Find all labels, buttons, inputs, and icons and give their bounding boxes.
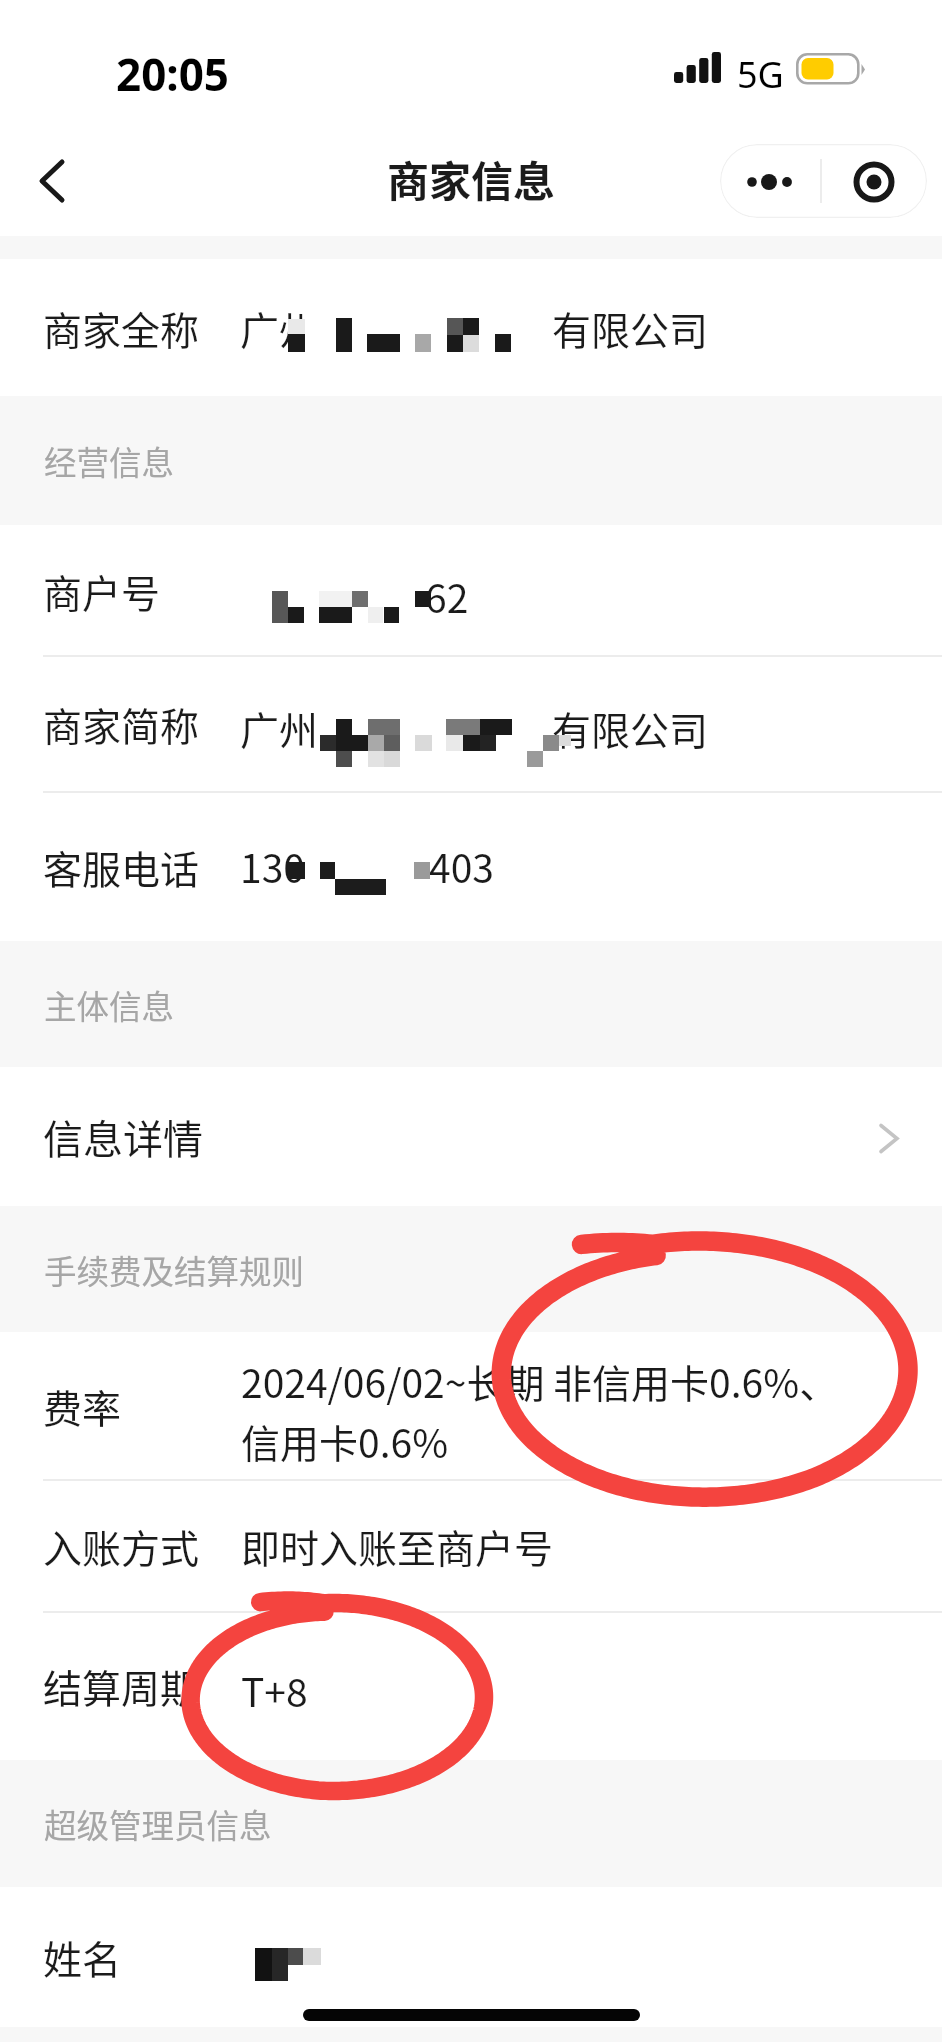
staticText: 130 bbox=[240, 838, 305, 894]
button[interactable]: 结算周期 bbox=[0, 1612, 942, 1760]
staticText: 有限公司 bbox=[552, 700, 709, 756]
button[interactable]: 费率 bbox=[0, 1332, 942, 1480]
staticText: 超级管理员信息 bbox=[44, 1800, 272, 1847]
button[interactable]: 商户号 bbox=[0, 525, 942, 656]
button[interactable]: Back bbox=[0, 134, 96, 222]
button[interactable]: 商家全称 bbox=[0, 259, 942, 396]
staticText: 商户号 bbox=[43, 563, 161, 619]
button[interactable]: Close mini program bbox=[824, 144, 927, 218]
staticText: T+8 bbox=[241, 1662, 308, 1718]
button[interactable]: 客服电话 bbox=[0, 792, 942, 941]
staticText: 403 bbox=[429, 838, 494, 894]
staticText: 2024/06/02~长期 非信用卡0.6%、 bbox=[241, 1353, 839, 1409]
staticText: 客服电话 bbox=[43, 839, 200, 895]
staticText: 经营信息 bbox=[44, 437, 175, 484]
button[interactable]: 姓名 bbox=[0, 1887, 942, 2027]
staticText: 手续费及结算规则 bbox=[44, 1246, 305, 1293]
staticText: 商家全称 bbox=[43, 300, 200, 356]
staticText: 商家信息 bbox=[387, 148, 556, 209]
staticText: 信息详情 bbox=[43, 1108, 203, 1166]
staticText: 62 bbox=[425, 568, 469, 624]
staticText: 入账方式 bbox=[43, 1518, 200, 1574]
button[interactable]: 信息详情 bbox=[0, 1067, 942, 1206]
staticText: 20:05 bbox=[116, 44, 230, 104]
staticText: 即时入账至商户号 bbox=[241, 1518, 554, 1574]
staticText: 姓名 bbox=[43, 1929, 122, 1985]
staticText: 费率 bbox=[43, 1378, 122, 1434]
staticText: 商家简称 bbox=[43, 696, 200, 752]
button[interactable]: 入账方式 bbox=[0, 1480, 942, 1612]
staticText: 信用卡0.6% bbox=[241, 1413, 449, 1469]
button[interactable]: 商家简称 bbox=[0, 656, 942, 792]
staticText: 有限公司 bbox=[552, 300, 709, 356]
button[interactable]: More options bbox=[720, 144, 824, 218]
staticText: 广州 bbox=[240, 700, 319, 756]
staticText: 主体信息 bbox=[44, 981, 175, 1028]
staticText: 5G bbox=[737, 50, 784, 99]
staticText: 广州 bbox=[240, 300, 319, 356]
staticText: 结算周期 bbox=[43, 1658, 200, 1714]
